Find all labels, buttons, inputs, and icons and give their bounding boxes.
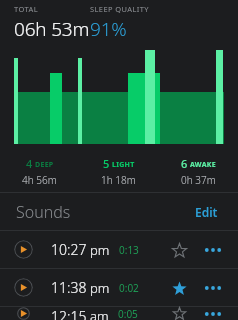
button[interactable]: Play recording [0,231,238,268]
button[interactable]: Play recording [14,240,33,259]
staticText: 12:15 [51,307,87,320]
staticText: 0:13 [119,243,139,257]
button[interactable]: Play recording [0,269,238,306]
button[interactable]: Edit [191,200,222,224]
staticText: pm [90,241,110,259]
staticText: 11:38 [51,278,87,297]
staticText: 0:02 [119,281,139,295]
staticText: DEEP [35,160,54,170]
staticText: 06h 53m [14,16,90,42]
staticText: 4h 56m [22,173,57,187]
staticText: 5 [103,156,110,171]
staticText: Sounds [16,201,71,223]
staticText: pm [90,279,110,297]
staticText: Edit [195,204,218,220]
button[interactable]: Unstar [168,277,190,299]
button[interactable]: Play recording [14,278,33,297]
staticText: SLEEP QUALITY [90,4,150,14]
button[interactable]: More options [200,277,226,299]
staticText: 0h 37m [181,173,216,187]
staticText: 1h 18m [101,173,136,187]
button[interactable]: More options [200,239,226,261]
staticText: TOTAL [14,4,39,14]
staticText: 6 [181,156,188,171]
staticText: LIGHT [112,160,135,170]
button[interactable]: Play recording [0,307,238,320]
staticText: 91% [90,16,127,42]
staticText: 4 [26,156,33,171]
button[interactable]: More options [200,307,226,320]
staticText: am [90,307,109,320]
staticText: 0:05 [118,307,138,320]
button[interactable]: Star [168,239,190,261]
button[interactable]: Play recording [14,307,33,320]
button[interactable]: Star [168,307,190,320]
staticText: AWAKE [190,160,216,170]
staticText: 10:27 [51,240,87,259]
